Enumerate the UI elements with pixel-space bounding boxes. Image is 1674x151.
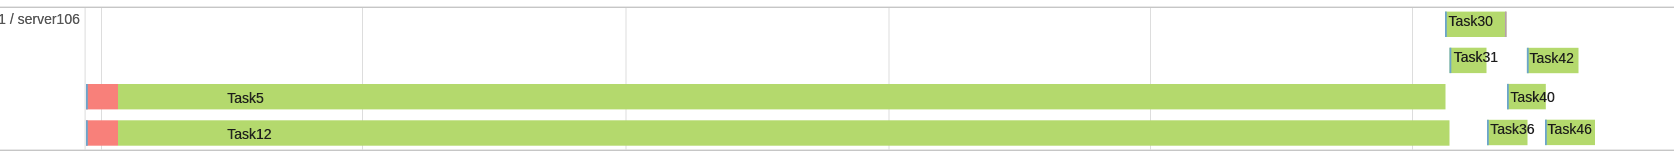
button[interactable]: Gantt chart timeline for server106 [0, 0, 1674, 151]
